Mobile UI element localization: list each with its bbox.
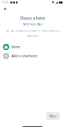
staticText: Learn more [27, 34, 38, 37]
button[interactable]: Next [46, 112, 60, 120]
staticText: 9:41 [2, 1, 9, 4]
staticText: Home [11, 45, 20, 49]
button[interactable]: Add a new home [0, 51, 65, 60]
staticText: Next [49, 114, 56, 118]
staticText: Nest Hub Max [23, 23, 42, 26]
button[interactable]: Home [0, 42, 65, 51]
button[interactable]: Learn more [27, 34, 38, 37]
staticText: Choose a home [20, 15, 45, 21]
staticText: You can change this later in device sett… [5, 29, 59, 32]
staticText: Add a new home [11, 54, 37, 58]
button[interactable]: Close [1, 5, 9, 13]
